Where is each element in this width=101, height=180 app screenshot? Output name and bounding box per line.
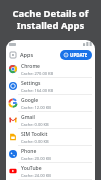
staticText: Cache: 0.00 KB	[21, 139, 49, 144]
staticText: Cache: 24.00 KB	[21, 173, 51, 178]
button[interactable]: Chrome	[6, 61, 95, 77]
button[interactable]: Settings	[6, 78, 95, 94]
button[interactable]: Gmail	[6, 112, 95, 128]
staticText: Gmail	[21, 114, 35, 121]
staticText: Google	[21, 97, 39, 104]
staticText: Cache: 164.00 KB	[21, 88, 54, 93]
staticText: YouTube	[21, 165, 42, 172]
button[interactable]: App icon	[9, 51, 17, 59]
staticText: Phone	[21, 148, 37, 155]
staticText: UPDATE	[70, 52, 88, 58]
button[interactable]: UPDATE	[60, 50, 92, 60]
staticText: Chrome	[21, 63, 40, 70]
staticText: Cache: 12.00 KB	[21, 105, 51, 110]
staticText: Cache Details of Installed Apps	[6, 7, 95, 32]
button[interactable]: YouTube	[6, 163, 95, 179]
staticText: Settings	[21, 80, 41, 87]
staticText: SIM Toolkit	[21, 131, 48, 138]
staticText: Apps	[20, 51, 34, 58]
button[interactable]: Phone	[6, 146, 95, 162]
staticText: Cache: 20.00 KB	[21, 156, 51, 161]
button[interactable]: SIM Toolkit	[6, 129, 95, 145]
button[interactable]: Google	[6, 95, 95, 111]
staticText: Cache: 270.00 KB	[21, 71, 54, 76]
staticText: Cache: 0.00 KB	[21, 122, 49, 127]
